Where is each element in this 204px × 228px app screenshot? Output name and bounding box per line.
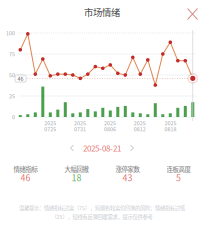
staticText: 2025 (164, 119, 176, 127)
staticText: 46 (17, 75, 23, 82)
staticText: 情绪指标 (13, 164, 37, 174)
staticText: 0731 (74, 125, 86, 133)
staticText: 大幅回撤 (64, 164, 88, 174)
staticText: 2025 (74, 119, 86, 127)
staticText: 43 (122, 171, 132, 184)
staticText: 25 (9, 92, 15, 100)
staticText: 0812 (134, 125, 146, 133)
staticText: 2025-08-21 (83, 142, 121, 154)
button[interactable]: 下一日 (123, 140, 141, 155)
staticText: 连板高度 (166, 164, 190, 174)
button[interactable]: 上一日 (63, 140, 81, 155)
staticText: 市场情绪 (84, 5, 120, 19)
staticText: 温馨提示：情绪指标过高（75），短期有较高位回落的风险；情绪指标过低 (19, 204, 185, 212)
staticText: 75 (9, 50, 15, 58)
staticText: 0 (12, 113, 15, 121)
staticText: 50 (9, 71, 15, 79)
staticText: 涨停家数 (115, 164, 139, 174)
staticText: 2025 (44, 119, 56, 127)
staticText: 2025 (134, 119, 146, 127)
button[interactable]: 关闭 (183, 4, 202, 24)
staticText: 18 (71, 171, 81, 184)
staticText: 100 (6, 29, 15, 37)
staticText: 5 (176, 171, 181, 184)
staticText: 46 (20, 171, 30, 184)
staticText: 2025 (104, 119, 116, 127)
staticText: （25），短线有反弹回暖需求，提示仅供参考 (51, 213, 152, 220)
staticText: 0725 (44, 125, 56, 133)
staticText: 0818 (164, 125, 176, 133)
staticText: 0806 (104, 125, 116, 133)
